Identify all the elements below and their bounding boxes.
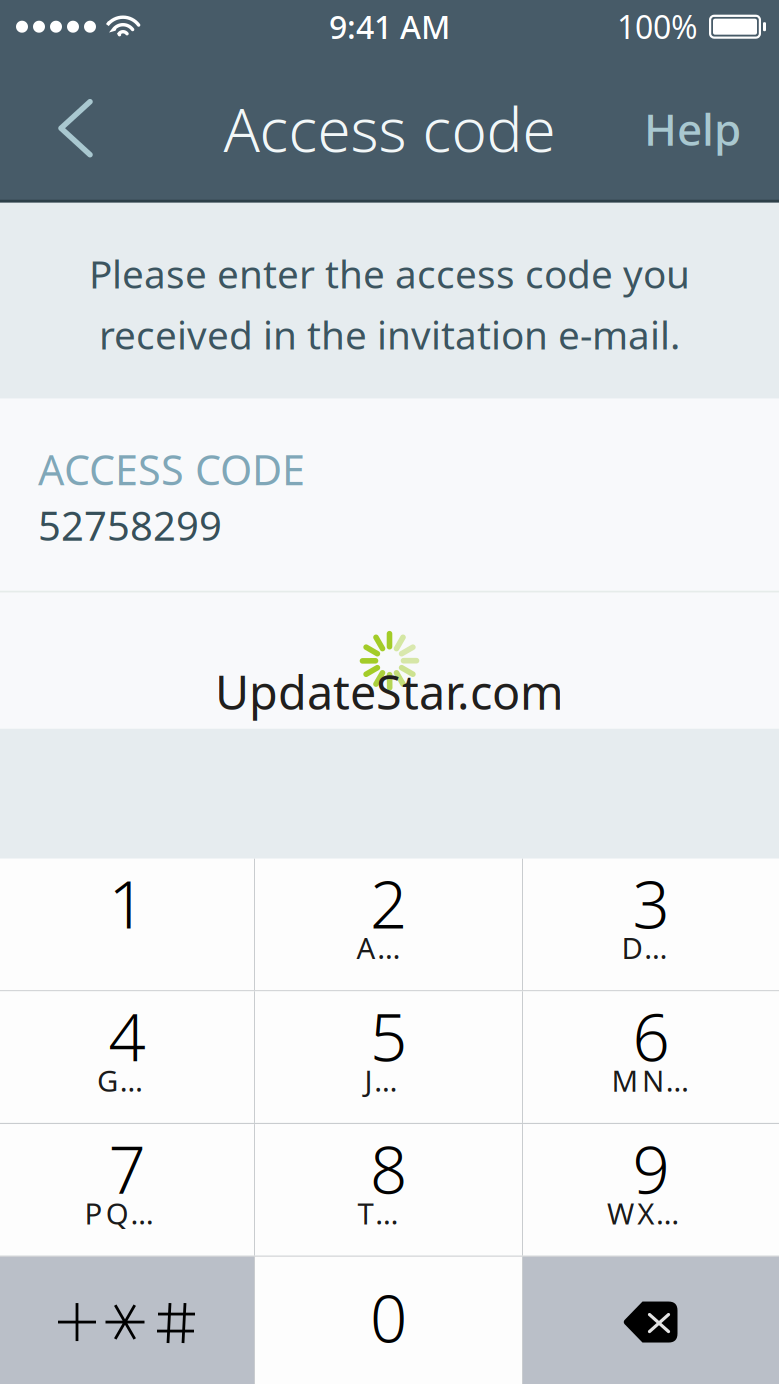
staticText: DEF xyxy=(622,928,680,967)
staticText: TUV xyxy=(358,1194,419,1233)
staticText: Help xyxy=(644,99,741,158)
button[interactable]: Back xyxy=(0,58,120,200)
staticText: ACCESS CODE xyxy=(38,442,305,497)
staticText: 52758299 xyxy=(38,499,222,552)
staticText: JKL xyxy=(365,1061,412,1100)
staticText: 7 xyxy=(108,1125,145,1212)
staticText: received in the invitation e-mail. xyxy=(99,309,680,360)
staticText: MNO xyxy=(612,1061,690,1100)
staticText: ABC xyxy=(357,928,420,967)
button[interactable]: 7 xyxy=(0,1124,254,1256)
staticText: Access code xyxy=(223,89,555,169)
button[interactable]: 0 xyxy=(255,1257,522,1384)
staticText: 9 xyxy=(632,1125,669,1212)
staticText: 1 xyxy=(108,860,145,946)
staticText: WXYZ xyxy=(607,1194,695,1233)
button[interactable]: 4 xyxy=(0,991,254,1123)
button[interactable]: 9 xyxy=(523,1124,779,1256)
button[interactable]: 6 xyxy=(523,991,779,1123)
staticText: 100% xyxy=(617,5,698,48)
staticText: 9:41 AM xyxy=(329,5,450,48)
staticText: 8 xyxy=(370,1125,407,1212)
button[interactable]: Symbols xyxy=(0,1257,254,1384)
button[interactable]: 2 xyxy=(255,859,522,990)
staticText: 6 xyxy=(632,992,669,1079)
staticText: 4 xyxy=(108,992,145,1079)
staticText: Please enter the access code you xyxy=(89,248,690,299)
staticText: 0 xyxy=(370,1274,407,1361)
staticText: UpdateStar.com xyxy=(215,661,564,723)
staticText: 5 xyxy=(370,992,407,1079)
button[interactable]: 8 xyxy=(255,1124,522,1256)
staticText: GHI xyxy=(97,1061,157,1100)
button[interactable]: Delete xyxy=(523,1257,779,1384)
button[interactable]: 3 xyxy=(523,859,779,990)
button[interactable]: 5 xyxy=(255,991,522,1123)
staticText: 3 xyxy=(632,860,669,946)
staticText: 2 xyxy=(370,860,407,946)
button[interactable]: 1 xyxy=(0,859,254,990)
button[interactable]: Help xyxy=(604,58,779,200)
staticText: PQRS xyxy=(84,1194,170,1233)
